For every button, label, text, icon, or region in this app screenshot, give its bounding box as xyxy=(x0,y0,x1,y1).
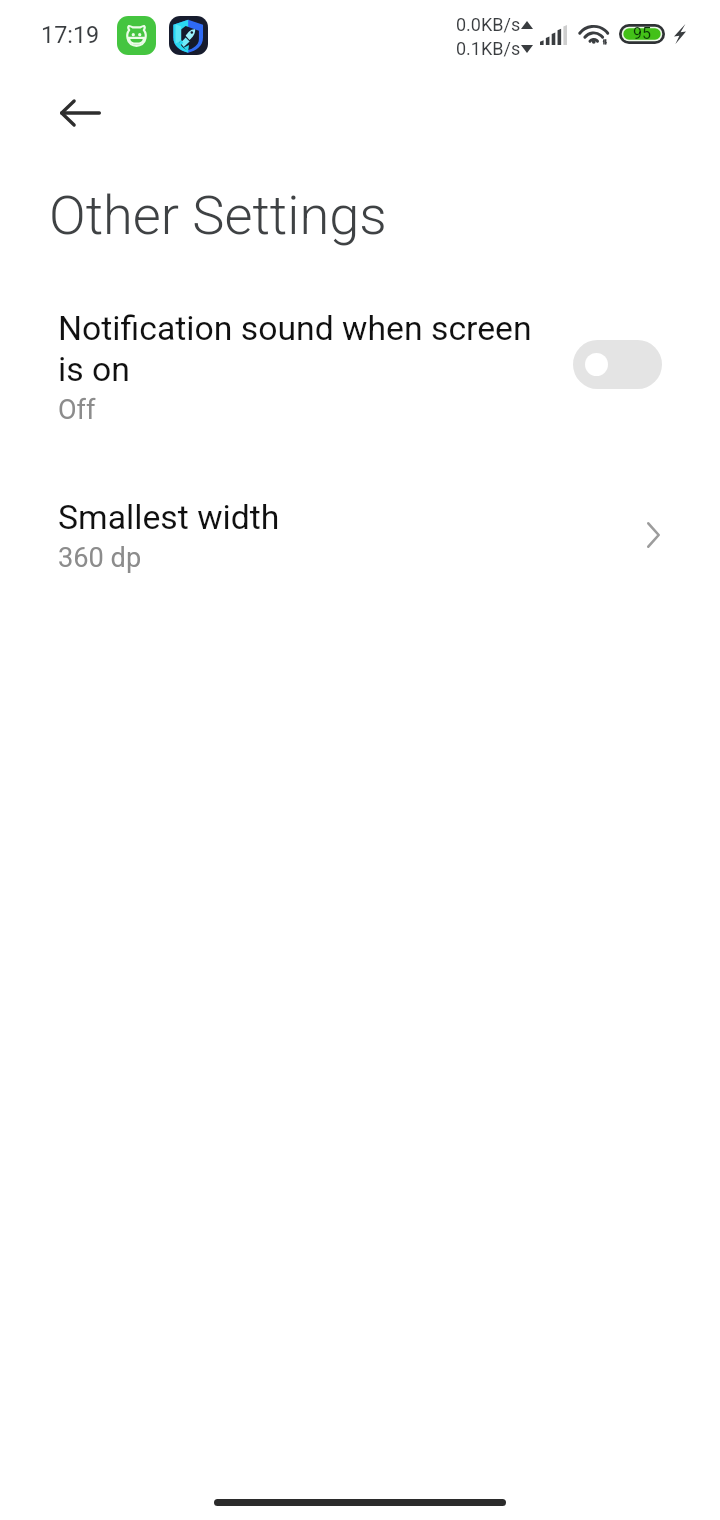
staticText: 95 xyxy=(633,24,651,43)
staticText: 0.1KB/s xyxy=(456,38,521,59)
button[interactable]: Back xyxy=(40,73,120,153)
button[interactable]: Smallest width xyxy=(0,493,720,585)
staticText: 0.0KB/s xyxy=(456,14,521,35)
button[interactable]: Notification sound when screen is on xyxy=(0,301,720,419)
button[interactable]: Notification sound when screen is on, Of… xyxy=(573,340,662,389)
staticText: Off xyxy=(58,394,96,426)
staticText: 17:19 xyxy=(41,21,100,48)
staticText: 360 dp xyxy=(58,542,142,574)
staticText: Other Settings xyxy=(49,184,387,248)
staticText: Smallest width xyxy=(58,498,280,538)
staticText: Notification sound when screen is on xyxy=(58,309,532,389)
